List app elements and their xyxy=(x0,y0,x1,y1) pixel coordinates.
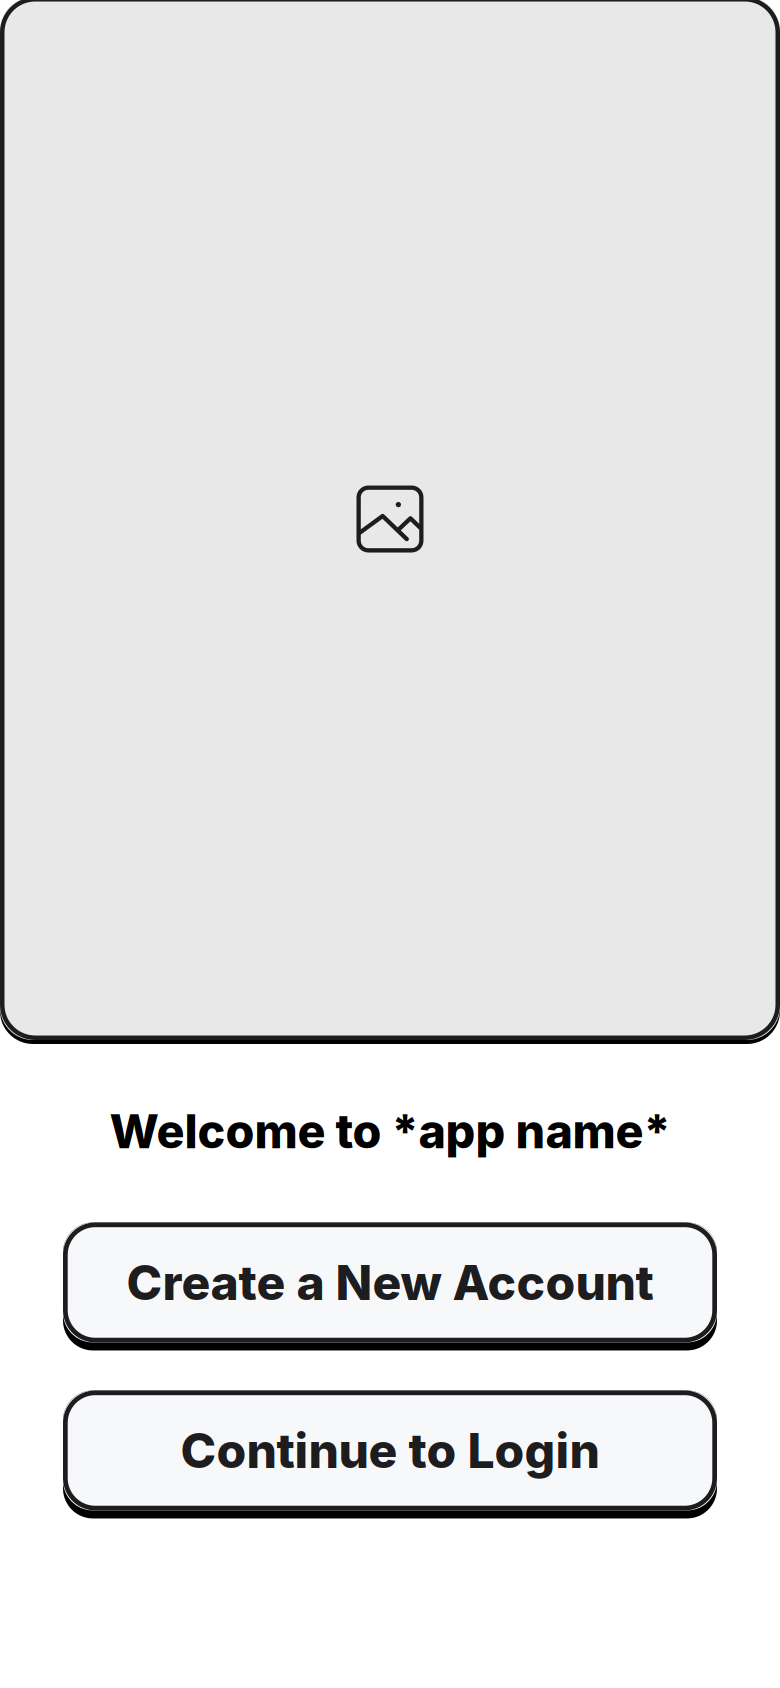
staticText: Welcome to *app name* xyxy=(109,1103,670,1159)
button[interactable]: Create a New Account xyxy=(63,1222,717,1350)
button[interactable]: Continue to Login xyxy=(63,1390,717,1518)
staticText: Create a New Account xyxy=(126,1253,653,1311)
staticText: Continue to Login xyxy=(180,1421,599,1479)
